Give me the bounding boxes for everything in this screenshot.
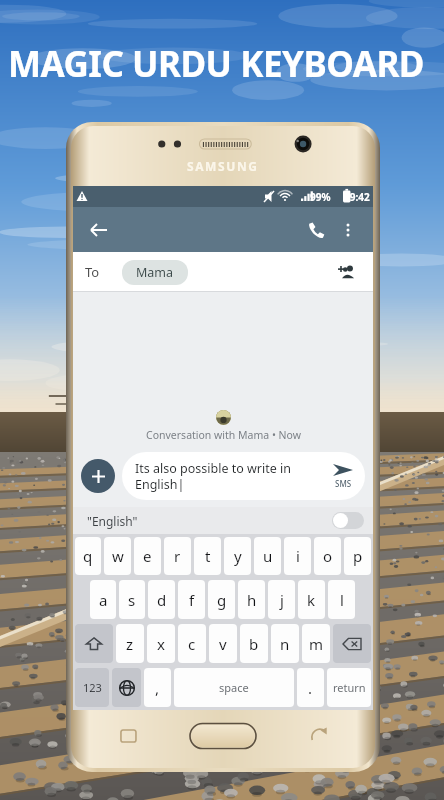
staticText: . bbox=[308, 678, 313, 698]
button[interactable]: space bbox=[174, 668, 294, 707]
button[interactable]: r bbox=[164, 537, 191, 575]
staticText: y bbox=[234, 546, 242, 566]
button[interactable]: Change language bbox=[112, 668, 141, 707]
button[interactable]: return bbox=[327, 668, 371, 707]
button[interactable]: l bbox=[328, 580, 355, 619]
button[interactable]: More options bbox=[333, 215, 363, 245]
staticText: Its also possible to write in English| bbox=[135, 460, 315, 492]
button[interactable]: o bbox=[314, 537, 341, 575]
button[interactable]: Its also possible to write in English| bbox=[122, 452, 365, 500]
button[interactable]: . bbox=[297, 668, 324, 707]
staticText: v bbox=[219, 634, 227, 654]
staticText: 09:42 bbox=[344, 190, 370, 204]
staticText: 99% bbox=[310, 190, 331, 204]
staticText: z bbox=[126, 634, 134, 654]
button[interactable]: x bbox=[147, 624, 175, 663]
button[interactable]: b bbox=[240, 624, 268, 663]
staticText: a bbox=[99, 590, 108, 610]
staticText: i bbox=[296, 546, 300, 566]
button[interactable]: n bbox=[271, 624, 299, 663]
button[interactable]: q bbox=[75, 537, 101, 575]
staticText: e bbox=[143, 546, 152, 566]
staticText: MAGIC URDU KEYBOARD bbox=[8, 40, 424, 88]
staticText: Conversation with Mama • Now bbox=[146, 428, 301, 442]
button[interactable]: f bbox=[178, 580, 205, 619]
staticText: w bbox=[112, 546, 124, 566]
staticText: return bbox=[333, 680, 366, 695]
button[interactable]: s bbox=[119, 580, 145, 619]
button[interactable]: 123 bbox=[75, 668, 109, 707]
staticText: , bbox=[155, 678, 160, 698]
button[interactable]: Backspace bbox=[333, 624, 371, 663]
button[interactable]: Back bbox=[83, 214, 115, 246]
staticText: q bbox=[83, 546, 93, 566]
button[interactable]: Language toggle bbox=[332, 512, 364, 529]
button[interactable]: t bbox=[194, 537, 221, 575]
button[interactable]: u bbox=[254, 537, 281, 575]
staticText: h bbox=[247, 590, 257, 610]
button[interactable]: j bbox=[268, 580, 295, 619]
staticText: d bbox=[157, 590, 167, 610]
button[interactable]: z bbox=[116, 624, 144, 663]
staticText: j bbox=[280, 590, 284, 610]
staticText: n bbox=[280, 634, 290, 654]
button[interactable]: h bbox=[238, 580, 265, 619]
staticText: b bbox=[249, 634, 259, 654]
staticText: s bbox=[128, 590, 136, 610]
button[interactable]: Shift bbox=[75, 624, 113, 663]
staticText: To bbox=[85, 263, 100, 281]
button[interactable]: , bbox=[144, 668, 171, 707]
staticText: "English" bbox=[87, 513, 138, 529]
button[interactable]: y bbox=[224, 537, 251, 575]
staticText: k bbox=[307, 590, 316, 610]
staticText: r bbox=[174, 546, 181, 566]
staticText: f bbox=[189, 590, 195, 610]
button[interactable]: k bbox=[298, 580, 325, 619]
button[interactable]: v bbox=[209, 624, 237, 663]
staticText: m bbox=[309, 634, 324, 654]
staticText: l bbox=[340, 590, 344, 610]
button[interactable]: c bbox=[178, 624, 206, 663]
button[interactable]: d bbox=[148, 580, 175, 619]
staticText: SAMSUNG bbox=[187, 158, 259, 174]
button[interactable]: w bbox=[104, 537, 131, 575]
staticText: Mama bbox=[136, 264, 174, 281]
staticText: c bbox=[188, 634, 196, 654]
button[interactable]: a bbox=[90, 580, 116, 619]
button[interactable]: Add attachment bbox=[81, 459, 115, 493]
button[interactable]: Send SMS bbox=[321, 463, 365, 489]
button[interactable]: Add recipient bbox=[331, 257, 361, 287]
staticText: o bbox=[323, 546, 333, 566]
staticText: 123 bbox=[83, 680, 102, 695]
staticText: t bbox=[205, 546, 211, 566]
staticText: space bbox=[219, 680, 249, 695]
button[interactable]: m bbox=[302, 624, 330, 663]
staticText: g bbox=[217, 590, 227, 610]
staticText: SMS bbox=[335, 478, 352, 489]
staticText: x bbox=[157, 634, 165, 654]
button[interactable]: p bbox=[344, 537, 371, 575]
staticText: p bbox=[353, 546, 363, 566]
button[interactable]: e bbox=[134, 537, 161, 575]
staticText: u bbox=[263, 546, 273, 566]
button[interactable]: g bbox=[208, 580, 235, 619]
button[interactable]: Mama bbox=[122, 260, 188, 285]
button[interactable]: i bbox=[284, 537, 311, 575]
button[interactable]: Call bbox=[299, 213, 333, 247]
